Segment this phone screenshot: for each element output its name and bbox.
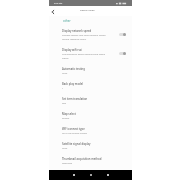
- button[interactable]: Recents: [106, 173, 109, 176]
- staticText: Go to the mobile system: [62, 132, 88, 135]
- button[interactable]: Set item translation: [49, 93, 132, 108]
- staticText: Display network speed: [62, 29, 92, 33]
- staticText: download: [62, 162, 73, 165]
- staticText: free: [62, 102, 67, 105]
- staticText: WiFi connect type: [62, 127, 85, 131]
- button[interactable]: Satellite signal display: [49, 138, 132, 153]
- button[interactable]: Thumbnail acquisition method: [49, 153, 132, 168]
- staticText: 1: [62, 87, 64, 90]
- button[interactable]: Back play model: [49, 78, 132, 93]
- button[interactable]: Display wifi rssi: [49, 44, 132, 63]
- button[interactable]: Home: [89, 173, 92, 176]
- staticText: google: [62, 117, 70, 120]
- staticText: other: [63, 19, 71, 23]
- button[interactable]: Map select: [49, 108, 132, 123]
- button[interactable]: Toggle: [119, 52, 126, 55]
- button[interactable]: Back: [49, 8, 56, 15]
- staticText: close: [62, 147, 68, 150]
- button[interactable]: Back: [72, 173, 75, 176]
- staticText: Preview display real-time network speed …: [62, 34, 106, 40]
- button[interactable]: Toggle: [119, 33, 126, 36]
- staticText: close: [62, 72, 68, 75]
- staticText: Debug mode: [80, 8, 95, 11]
- staticText: Satellite signal display: [62, 142, 91, 146]
- button[interactable]: WiFi connect type: [49, 123, 132, 138]
- staticText: Thumbnail acquisition method: [62, 157, 102, 161]
- staticText: Back play model: [62, 82, 83, 86]
- button[interactable]: Display network speed: [49, 25, 132, 44]
- staticText: 2:19 PM: [54, 2, 63, 5]
- staticText: Display wifi rssi: [62, 48, 82, 52]
- staticText: The wlanwork device displays wifi signal…: [62, 53, 106, 59]
- staticText: Set item translation: [62, 97, 88, 101]
- staticText: Automatic testing: [62, 67, 85, 71]
- button[interactable]: Automatic testing: [49, 63, 132, 78]
- staticText: Map select: [62, 112, 76, 116]
